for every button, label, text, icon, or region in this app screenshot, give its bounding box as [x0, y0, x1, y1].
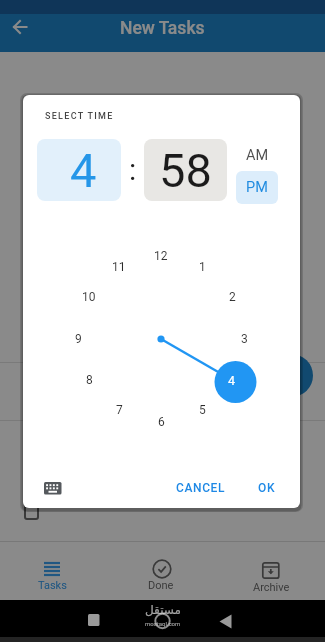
staticText: 4	[70, 143, 97, 198]
button[interactable]: AM	[236, 139, 278, 171]
staticText: 58	[159, 143, 212, 198]
button[interactable]	[12, 548, 96, 598]
staticText: 5	[199, 403, 206, 417]
button[interactable]: CANCEL	[172, 478, 230, 498]
button[interactable]	[76, 608, 112, 636]
button[interactable]: OK	[248, 478, 286, 498]
staticText: 9	[75, 332, 82, 346]
staticText: mostaql.com	[145, 620, 181, 627]
staticText: SELECT TIME	[45, 111, 114, 122]
button[interactable]	[228, 548, 312, 598]
staticText: AM	[246, 147, 269, 164]
staticText: 1	[199, 260, 206, 274]
staticText: New Tasks	[120, 18, 205, 38]
button[interactable]	[8, 15, 32, 39]
staticText: 3	[241, 332, 248, 346]
staticText: Tasks	[38, 579, 67, 592]
staticText: CANCEL	[176, 481, 226, 495]
button[interactable]	[210, 608, 246, 636]
staticText: 4	[228, 373, 236, 388]
staticText: OK	[258, 481, 276, 495]
button[interactable]: PM	[236, 171, 278, 204]
button[interactable]: 4	[37, 139, 121, 201]
button[interactable]	[270, 354, 313, 397]
staticText: 2	[229, 290, 236, 304]
staticText: 7	[116, 403, 123, 417]
staticText: 8	[86, 373, 93, 387]
button[interactable]	[120, 548, 204, 598]
button[interactable]	[38, 476, 68, 501]
staticText: 11	[112, 260, 126, 274]
button[interactable]	[145, 608, 181, 636]
staticText: Done	[148, 579, 174, 592]
staticText: Archive	[253, 581, 290, 594]
staticText: PM	[246, 179, 268, 196]
staticText: 10	[82, 290, 96, 304]
staticText: :	[129, 152, 137, 187]
staticText: 6	[158, 415, 165, 429]
button[interactable]: 58	[144, 139, 227, 201]
staticText: 12	[154, 249, 168, 263]
staticText: مستقل	[145, 603, 181, 617]
